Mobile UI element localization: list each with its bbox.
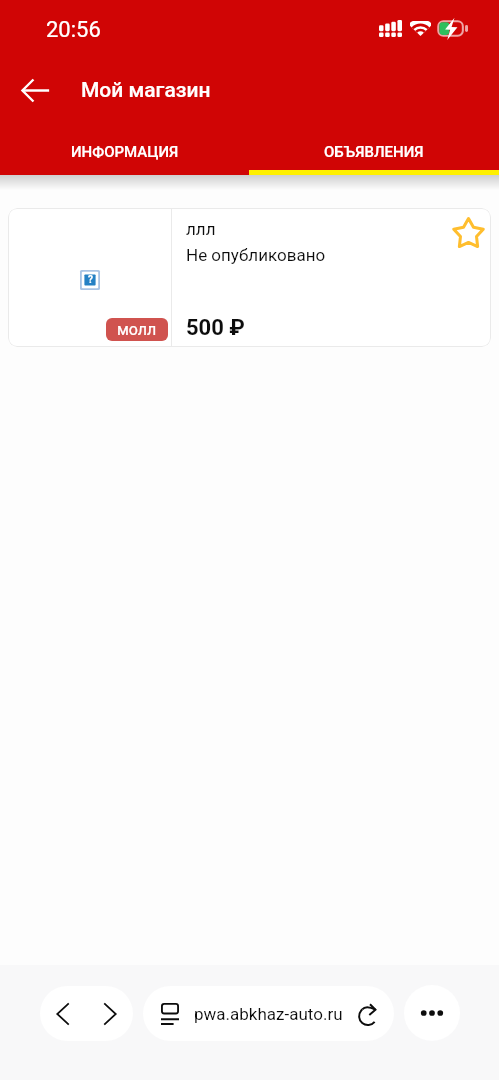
staticText: молл (117, 320, 157, 339)
button[interactable]: Reload (346, 991, 392, 1037)
button[interactable]: ИНФОРМАЦИЯ (0, 122, 249, 170)
button[interactable]: ? (8, 208, 491, 347)
button[interactable]: ОБЪЯВЛЕНИЯ (249, 122, 499, 170)
button[interactable]: More options (404, 985, 460, 1041)
staticText: ИНФОРМАЦИЯ (71, 143, 179, 161)
staticText: ? (88, 274, 93, 286)
staticText: ллл (186, 219, 216, 239)
button[interactable]: pwa.abkhaz-auto.ru (143, 986, 394, 1041)
staticText: 20:56 (46, 17, 101, 43)
staticText: Не опубликовано (186, 245, 326, 265)
button[interactable]: Back (40, 986, 86, 1041)
staticText: ОБЪЯВЛЕНИЯ (324, 143, 424, 161)
staticText: Мой магазин (81, 78, 211, 103)
button[interactable]: Back (13, 68, 57, 112)
button[interactable]: Forward (86, 986, 133, 1041)
staticText: 500 ₽ (186, 315, 245, 341)
staticText: pwa.abkhaz-auto.ru (194, 1004, 343, 1024)
button[interactable]: Favorite (448, 212, 488, 252)
